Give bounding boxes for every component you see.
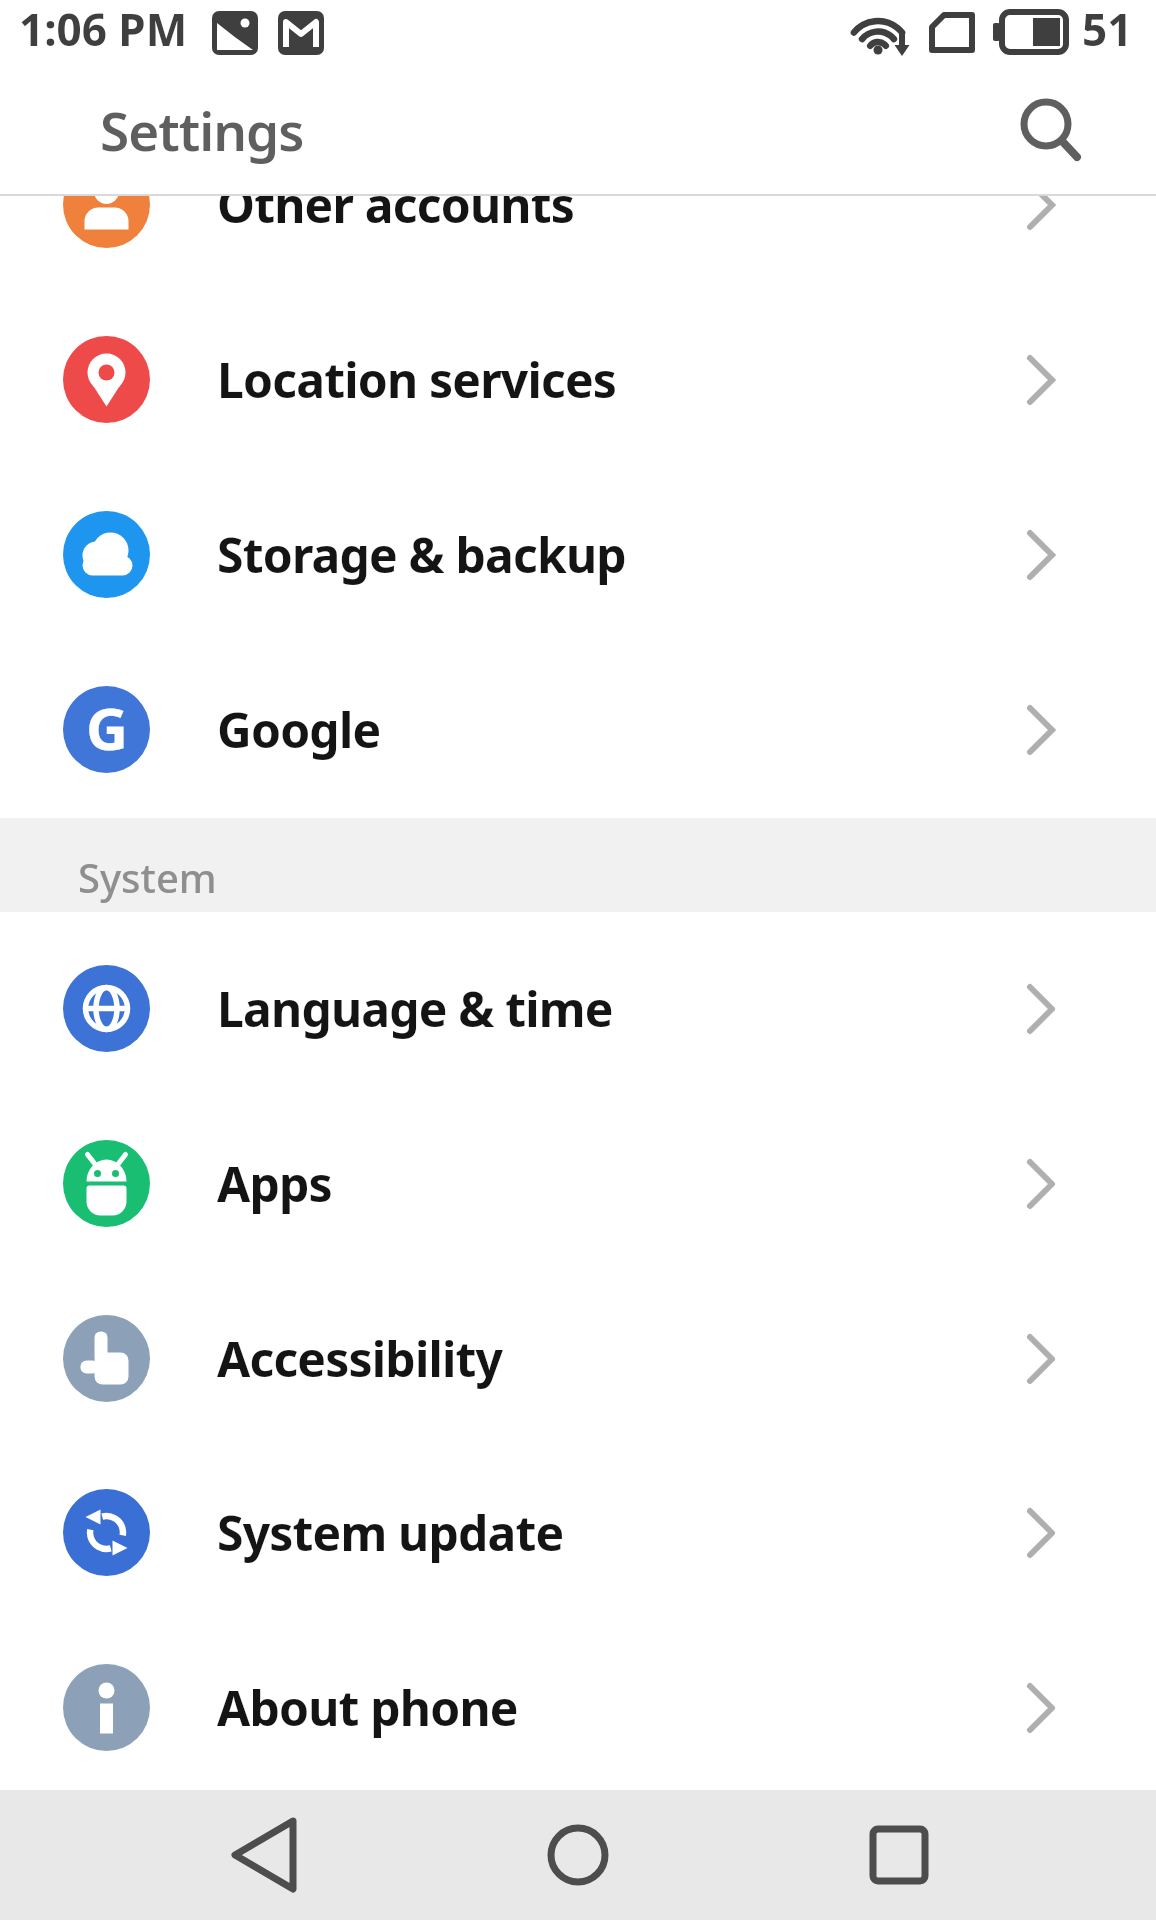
button[interactable] — [203, 1790, 323, 1920]
staticText: Language & time — [217, 976, 613, 1041]
staticText: G — [86, 688, 128, 767]
button[interactable] — [839, 1790, 959, 1920]
button[interactable]: About phone — [0, 1620, 1156, 1795]
staticText: About phone — [217, 1675, 518, 1740]
staticText: 51 — [1082, 0, 1133, 59]
staticText: 1:06 PM — [19, 0, 188, 59]
button[interactable]: System update — [0, 1445, 1156, 1620]
button[interactable]: Storage & backup — [0, 467, 1156, 642]
staticText: Storage & backup — [217, 522, 626, 587]
staticText: Accessibility — [217, 1326, 503, 1391]
button[interactable]: Accessibility — [0, 1271, 1156, 1446]
button[interactable]: Other accounts — [0, 117, 1156, 292]
button[interactable]: Language & time — [0, 921, 1156, 1096]
button[interactable] — [518, 1790, 638, 1920]
button[interactable]: Location services — [0, 292, 1156, 467]
staticText: System — [78, 850, 217, 904]
staticText: Other accounts — [217, 172, 575, 237]
button[interactable] — [1008, 88, 1092, 172]
staticText: Apps — [217, 1151, 332, 1216]
staticText: System update — [217, 1500, 564, 1565]
button[interactable]: Apps — [0, 1096, 1156, 1271]
staticText: Location services — [217, 347, 617, 412]
button[interactable]: G — [0, 642, 1156, 817]
staticText: Settings — [100, 94, 304, 166]
staticText: Google — [217, 697, 381, 762]
